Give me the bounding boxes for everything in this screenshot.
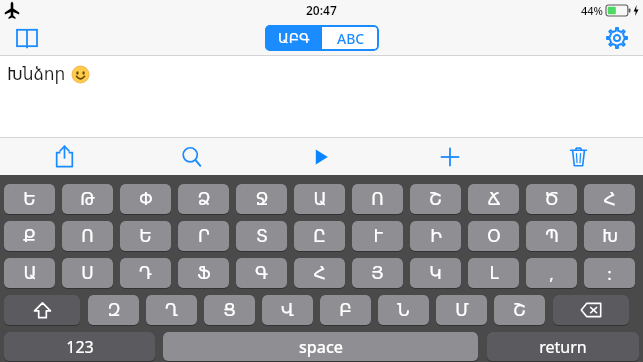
button[interactable]: Ֆ bbox=[178, 258, 229, 288]
staticText: Մ bbox=[455, 300, 469, 320]
staticText: Դ bbox=[139, 263, 152, 283]
button[interactable]: Dictionary bbox=[12, 23, 42, 53]
button[interactable]: Ա bbox=[4, 258, 55, 288]
staticText: Օ bbox=[487, 226, 501, 246]
button[interactable]: Մ bbox=[436, 295, 487, 325]
button[interactable]: Շ bbox=[410, 184, 461, 214]
staticText: Բ bbox=[339, 300, 352, 320]
button[interactable]: Ղ bbox=[146, 295, 197, 325]
staticText: Գ bbox=[255, 263, 268, 283]
button[interactable]: Ձ bbox=[178, 184, 229, 214]
button[interactable]: Հ bbox=[584, 184, 635, 214]
button[interactable]: : bbox=[584, 258, 635, 288]
button[interactable]: Ջ bbox=[236, 184, 287, 214]
button[interactable]: Settings bbox=[601, 22, 633, 54]
button[interactable]: Գ bbox=[236, 258, 287, 288]
button[interactable]: Ա bbox=[294, 184, 345, 214]
button[interactable]: Ճ bbox=[468, 184, 519, 214]
staticText: Խ bbox=[602, 226, 618, 246]
staticText: Ն bbox=[397, 300, 410, 320]
button[interactable]: Ր bbox=[178, 221, 229, 251]
button[interactable]: Delete bbox=[514, 138, 643, 175]
staticText: Շ bbox=[513, 300, 526, 320]
button[interactable]: Ո bbox=[352, 184, 403, 214]
button[interactable]: Ե bbox=[4, 184, 55, 214]
staticText: ԱԲԳ bbox=[278, 30, 310, 46]
button[interactable]: 123 bbox=[4, 332, 155, 361]
staticText: Շ bbox=[429, 189, 442, 209]
button[interactable]: Թ bbox=[62, 184, 113, 214]
button[interactable]: Ք bbox=[4, 221, 55, 251]
button[interactable]: Պ bbox=[526, 221, 577, 251]
staticText: Ճ bbox=[487, 189, 501, 209]
button[interactable]: Հ bbox=[294, 258, 345, 288]
button[interactable]: Search bbox=[128, 138, 256, 175]
staticText: Ր bbox=[198, 226, 210, 246]
button[interactable]: Տ bbox=[236, 221, 287, 251]
button[interactable]: Ի bbox=[410, 221, 461, 251]
staticText: Ց bbox=[223, 300, 236, 320]
button[interactable]: Key bbox=[553, 295, 629, 325]
staticText: return bbox=[539, 336, 587, 358]
button[interactable]: Կ bbox=[410, 258, 461, 288]
staticText: Ո bbox=[371, 189, 384, 209]
button[interactable]: return bbox=[487, 332, 639, 361]
button[interactable]: Key bbox=[4, 295, 80, 325]
button[interactable]: Բ bbox=[320, 295, 371, 325]
staticText: Ե bbox=[139, 226, 152, 246]
button[interactable]: Ս bbox=[62, 258, 113, 288]
staticText: Ա bbox=[313, 189, 327, 209]
button[interactable]: ԱԲԳ bbox=[265, 25, 322, 51]
button[interactable]: Զ bbox=[88, 295, 139, 325]
staticText: Թ bbox=[80, 189, 95, 209]
button[interactable]: Օ bbox=[468, 221, 519, 251]
staticText: Ը bbox=[313, 226, 326, 246]
staticText: Փ bbox=[139, 189, 153, 209]
staticText: Ւ bbox=[373, 226, 383, 246]
staticText: Ս bbox=[81, 263, 94, 283]
staticText: Յ bbox=[371, 263, 384, 283]
button[interactable]: Շ bbox=[494, 295, 545, 325]
staticText: 20:47 bbox=[306, 2, 337, 18]
button[interactable]: Լ bbox=[468, 258, 519, 288]
staticText: , bbox=[549, 262, 554, 285]
staticText: Զ bbox=[107, 300, 121, 320]
staticText: Ձ bbox=[197, 189, 211, 209]
staticText: Ջ bbox=[255, 189, 269, 209]
button[interactable]: Ե bbox=[120, 221, 171, 251]
staticText: ABC bbox=[337, 29, 365, 48]
button[interactable]: ABC bbox=[322, 25, 379, 51]
button[interactable]: Ց bbox=[204, 295, 255, 325]
button[interactable]: Share bbox=[0, 138, 128, 175]
button[interactable]: Ծ bbox=[526, 184, 577, 214]
button[interactable]: Ը bbox=[294, 221, 345, 251]
button[interactable]: Յ bbox=[352, 258, 403, 288]
staticText: Ք bbox=[23, 226, 36, 246]
staticText: 123 bbox=[66, 336, 94, 358]
staticText: Հ bbox=[603, 189, 616, 209]
staticText: : bbox=[607, 262, 612, 285]
button[interactable]: Ո bbox=[62, 221, 113, 251]
staticText: Տ bbox=[256, 226, 268, 246]
staticText: Ի bbox=[430, 226, 442, 246]
staticText: Կ bbox=[429, 263, 442, 283]
staticText: Ե bbox=[23, 189, 36, 209]
button[interactable]: Ն bbox=[378, 295, 429, 325]
staticText: Լ bbox=[489, 263, 499, 283]
staticText: Ֆ bbox=[197, 263, 211, 283]
button[interactable]: Վ bbox=[262, 295, 313, 325]
button[interactable]: , bbox=[526, 258, 577, 288]
staticText: Ծ bbox=[544, 189, 559, 209]
button[interactable]: Դ bbox=[120, 258, 171, 288]
button[interactable]: Փ bbox=[120, 184, 171, 214]
staticText: 44% bbox=[581, 3, 603, 18]
button[interactable]: space bbox=[163, 332, 478, 361]
button[interactable]: Ւ bbox=[352, 221, 403, 251]
staticText: Ո bbox=[81, 226, 94, 246]
staticText: Հ bbox=[313, 263, 326, 283]
button[interactable]: Խ bbox=[584, 221, 635, 251]
button[interactable]: Add bbox=[385, 138, 514, 175]
button[interactable]: Play bbox=[256, 138, 385, 175]
staticText: Ղ bbox=[165, 300, 178, 320]
staticText: Վ bbox=[281, 300, 294, 320]
